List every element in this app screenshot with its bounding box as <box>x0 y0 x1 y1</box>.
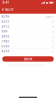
staticText: 确认订单 <box>5 8 13 11</box>
staticText: 积分抵扣 <box>2 45 10 48</box>
staticText: 9:41 <box>2 1 8 4</box>
staticText: 请选择 <box>45 15 51 18</box>
button[interactable]: Back <box>0 5 5 14</box>
button[interactable]: 发票信息 <box>0 34 56 39</box>
button[interactable]: 支付方式 <box>0 24 56 29</box>
staticText: 配送方式 <box>2 20 10 23</box>
staticText: 商品清单 <box>2 50 10 53</box>
button[interactable]: 提交订单 <box>2 56 54 62</box>
staticText: 提交订单即表示您已同意《用户服务协议》 <box>9 64 47 66</box>
button[interactable]: 收货地址 <box>0 14 56 19</box>
staticText: 优惠券 <box>2 30 8 33</box>
staticText: 提交订单 <box>24 57 32 61</box>
staticText: 收货地址 <box>2 15 10 18</box>
staticText: 订单备注 <box>2 40 10 43</box>
staticText: 发票信息 <box>2 35 10 38</box>
button[interactable]: 商品清单 <box>0 49 56 54</box>
button[interactable]: 配送方式 <box>0 19 56 24</box>
button[interactable]: 优惠券 <box>0 29 56 34</box>
button[interactable]: 积分抵扣 <box>0 44 56 49</box>
button[interactable]: 订单备注 <box>0 39 56 44</box>
staticText: 支付方式 <box>2 25 10 28</box>
